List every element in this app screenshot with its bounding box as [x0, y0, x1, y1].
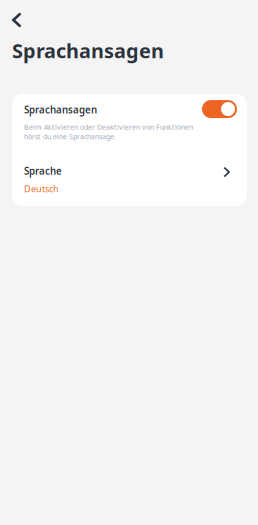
button[interactable]: Sprachansagen — [202, 103, 237, 121]
staticText: Sprachansagen — [12, 37, 164, 64]
staticText: Sprache — [24, 164, 62, 178]
staticText: Sprachansagen — [24, 103, 97, 116]
button[interactable]: Back — [0, 0, 34, 32]
staticText: Beim Aktivieren oder Deaktivieren von Fu… — [24, 122, 193, 141]
staticText: Deutsch — [24, 183, 59, 195]
button[interactable]: Sprache — [12, 141, 247, 206]
